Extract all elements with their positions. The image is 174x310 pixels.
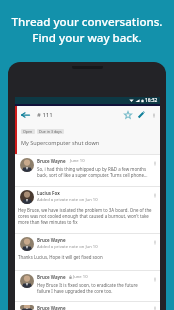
button[interactable]: More bbox=[150, 189, 160, 201]
staticText: Due in 3 days bbox=[39, 129, 62, 134]
button[interactable]: More bbox=[150, 304, 160, 310]
button[interactable]: More bbox=[15, 302, 160, 310]
staticText: back, sort of like a super computer. Tur… bbox=[37, 172, 148, 178]
staticText: cores was not cooled enough that caused … bbox=[18, 213, 149, 219]
staticText: Bruce Wayne bbox=[37, 158, 66, 164]
button[interactable]: Star bbox=[121, 106, 134, 124]
staticText: failure I have upgraded the core too. bbox=[37, 288, 113, 294]
staticText: Added a private note on Jun 10 bbox=[37, 197, 98, 203]
staticText: June 10 bbox=[70, 158, 85, 164]
staticText: Bruce Wayne bbox=[37, 305, 66, 310]
staticText: more than few minutes to fix bbox=[18, 219, 78, 225]
staticText: Bruce Wayne bbox=[37, 274, 66, 280]
button[interactable]: More bbox=[150, 157, 160, 169]
button[interactable]: More bbox=[15, 234, 160, 270]
button[interactable]: Due in 3 days bbox=[37, 129, 64, 134]
staticText: Hey Bruce, we have isolated the problem … bbox=[18, 207, 152, 213]
staticText: 16:32 bbox=[145, 97, 158, 104]
button[interactable]: More bbox=[15, 155, 160, 186]
button[interactable]: More options bbox=[147, 106, 160, 124]
staticText: Thread your conversations. Find your way… bbox=[0, 14, 174, 45]
staticText: Lucius Fox bbox=[37, 190, 60, 196]
staticText: Open bbox=[23, 129, 33, 134]
button[interactable]: Back bbox=[17, 106, 33, 124]
button[interactable]: More bbox=[15, 187, 160, 233]
button[interactable]: More bbox=[15, 271, 160, 301]
button[interactable]: More bbox=[150, 273, 160, 285]
staticText: Added a private note on Jun 10 bbox=[37, 244, 98, 250]
staticText: Thanks Lucius, Hope it will get fixed so… bbox=[18, 254, 103, 260]
staticText: Hey Bruce It is fixed soon, to eradicate… bbox=[37, 282, 138, 288]
button[interactable]: Edit bbox=[134, 106, 147, 124]
button[interactable]: More bbox=[150, 236, 160, 248]
staticText: # 111 bbox=[37, 111, 53, 119]
staticText: So, i had this thing whipped up by R&D a… bbox=[37, 166, 147, 172]
staticText: My Supercomputer shut down bbox=[21, 139, 100, 146]
button[interactable]: Open bbox=[21, 129, 35, 134]
staticText: June 10 bbox=[73, 274, 88, 280]
staticText: Bruce Wayne bbox=[37, 237, 66, 243]
